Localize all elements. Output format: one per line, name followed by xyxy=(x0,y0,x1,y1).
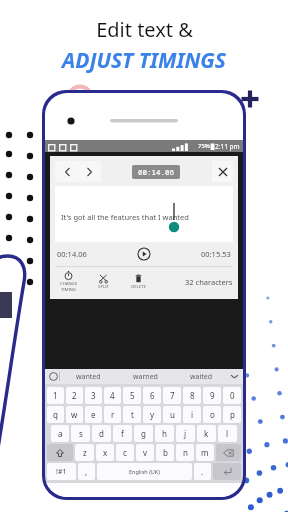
button[interactable]: o xyxy=(203,406,221,423)
staticText: b xyxy=(163,447,168,458)
button[interactable]: t xyxy=(123,406,141,423)
staticText: 8 xyxy=(190,390,195,401)
staticText: a xyxy=(58,428,63,439)
button[interactable]: DELETE xyxy=(125,274,151,290)
button[interactable]: f xyxy=(113,425,132,442)
staticText: 75% xyxy=(198,142,210,150)
button[interactable]: 9 xyxy=(203,387,221,404)
button[interactable]: j xyxy=(176,425,195,442)
staticText: s xyxy=(79,428,83,439)
button[interactable]: More suggestions xyxy=(229,371,240,382)
button[interactable]: g xyxy=(134,425,153,442)
button[interactable]: Close xyxy=(212,161,233,182)
button[interactable]: 8 xyxy=(183,387,201,404)
staticText: ADJUST TIMINGS xyxy=(62,46,226,75)
button[interactable]: It's got all the features that I wanted xyxy=(55,186,233,242)
staticText: 00:15.53 xyxy=(201,249,231,259)
button[interactable]: k xyxy=(197,425,216,442)
staticText: , xyxy=(85,466,88,477)
button[interactable]: n xyxy=(176,444,194,461)
staticText: 6 xyxy=(150,390,155,401)
button[interactable]: u xyxy=(163,406,181,423)
button[interactable]: 1 xyxy=(47,387,64,404)
button[interactable]: Previous xyxy=(55,161,101,182)
button[interactable]: warned xyxy=(117,369,173,384)
button[interactable]: Emoji xyxy=(48,371,59,382)
button[interactable]: 6 xyxy=(143,387,161,404)
button[interactable]: English (UK) xyxy=(97,463,192,480)
staticText: 3 xyxy=(91,390,96,401)
staticText: j xyxy=(184,428,187,439)
staticText: 2:11 pm xyxy=(215,142,240,151)
button[interactable]: 4 xyxy=(104,387,121,404)
button[interactable]: y xyxy=(143,406,161,423)
staticText: warned xyxy=(133,372,158,382)
staticText: 9 xyxy=(210,390,215,401)
staticText: p xyxy=(230,409,235,420)
button[interactable]: h xyxy=(155,425,174,442)
staticText: t xyxy=(131,409,134,420)
button[interactable]: z xyxy=(75,444,94,461)
staticText: !#1 xyxy=(56,467,67,477)
button[interactable]: Next xyxy=(80,163,98,181)
button[interactable]: 2 xyxy=(66,387,83,404)
button[interactable]: Enter xyxy=(213,463,241,480)
button[interactable]: b xyxy=(156,444,174,461)
staticText: h xyxy=(162,428,167,439)
staticText: f xyxy=(121,428,124,439)
button[interactable]: c xyxy=(116,444,134,461)
staticText: y xyxy=(150,409,155,420)
staticText: w xyxy=(71,409,78,420)
button[interactable]: p xyxy=(223,406,241,423)
button[interactable]: r xyxy=(104,406,121,423)
button[interactable]: x xyxy=(96,444,114,461)
button[interactable]: Play xyxy=(137,247,151,261)
button[interactable]: wanted xyxy=(60,369,117,384)
button[interactable]: l xyxy=(218,425,237,442)
button[interactable]: w xyxy=(66,406,83,423)
button[interactable]: CHANGE TIMING xyxy=(55,271,81,292)
staticText: 00:14.06 xyxy=(57,249,87,259)
button[interactable]: a xyxy=(51,425,69,442)
staticText: l xyxy=(226,428,229,439)
button[interactable]: Backspace xyxy=(216,444,241,461)
button[interactable]: !#1 xyxy=(47,463,76,480)
staticText: x xyxy=(103,447,108,458)
staticText: k xyxy=(204,428,209,439)
staticText: v xyxy=(143,447,148,458)
button[interactable]: s xyxy=(71,425,90,442)
staticText: 5 xyxy=(130,390,135,401)
staticText: CHANGE TIMING xyxy=(60,281,77,292)
staticText: n xyxy=(183,447,188,458)
staticText: wanted xyxy=(76,372,101,382)
staticText: waited xyxy=(190,372,213,382)
staticText: i xyxy=(191,409,194,420)
button[interactable]: 3 xyxy=(85,387,102,404)
button[interactable]: Previous xyxy=(58,163,76,181)
button[interactable]: . xyxy=(194,463,211,480)
button[interactable]: m xyxy=(196,444,214,461)
staticText: 4 xyxy=(110,390,115,401)
staticText: Edit text & xyxy=(96,16,193,43)
button[interactable]: waited xyxy=(173,369,229,384)
button[interactable]: Shift xyxy=(47,444,73,461)
button[interactable]: v xyxy=(136,444,154,461)
button[interactable]: q xyxy=(47,406,64,423)
button[interactable]: i xyxy=(183,406,201,423)
staticText: 1 xyxy=(53,390,58,401)
button[interactable]: 00:14.06 xyxy=(138,167,174,177)
staticText: 00:14.06 xyxy=(138,167,174,177)
button[interactable]: 5 xyxy=(123,387,141,404)
button[interactable]: 0 xyxy=(223,387,241,404)
button[interactable]: , xyxy=(78,463,95,480)
button[interactable]: e xyxy=(85,406,102,423)
staticText: u xyxy=(170,409,175,420)
staticText: r xyxy=(111,409,115,420)
staticText: English (UK) xyxy=(129,468,160,475)
button[interactable]: SPLIT xyxy=(90,274,116,290)
staticText: q xyxy=(53,409,58,420)
button[interactable]: d xyxy=(92,425,111,442)
staticText: 32 characters xyxy=(185,277,233,287)
staticText: o xyxy=(210,409,215,420)
button[interactable]: 7 xyxy=(163,387,181,404)
